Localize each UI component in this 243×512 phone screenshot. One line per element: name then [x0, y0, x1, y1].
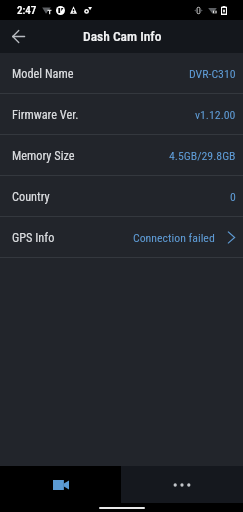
button[interactable]: Memory Size: [0, 135, 243, 176]
staticText: DVR-C310: [189, 67, 236, 81]
staticText: v1.12.00: [195, 108, 236, 122]
staticText: Country: [12, 190, 50, 204]
button[interactable]: More options: [121, 466, 243, 503]
staticText: GPS Info: [12, 231, 55, 245]
button[interactable]: Firmware Ver.: [0, 94, 243, 135]
staticText: Connection failed: [133, 231, 215, 245]
button[interactable]: Country: [0, 176, 243, 217]
staticText: 4.5GB/29.8GB: [169, 149, 236, 163]
button[interactable]: Model Name: [0, 53, 243, 94]
staticText: Model Name: [12, 67, 74, 81]
staticText: Dash Cam Info: [83, 28, 162, 44]
button[interactable]: Recording: [0, 466, 121, 503]
button[interactable]: Back: [0, 20, 36, 53]
button[interactable]: GPS Info: [0, 217, 243, 258]
staticText: Firmware Ver.: [12, 108, 79, 122]
staticText: 0: [230, 190, 236, 204]
staticText: Memory Size: [12, 149, 75, 163]
staticText: 2:47: [17, 4, 37, 17]
